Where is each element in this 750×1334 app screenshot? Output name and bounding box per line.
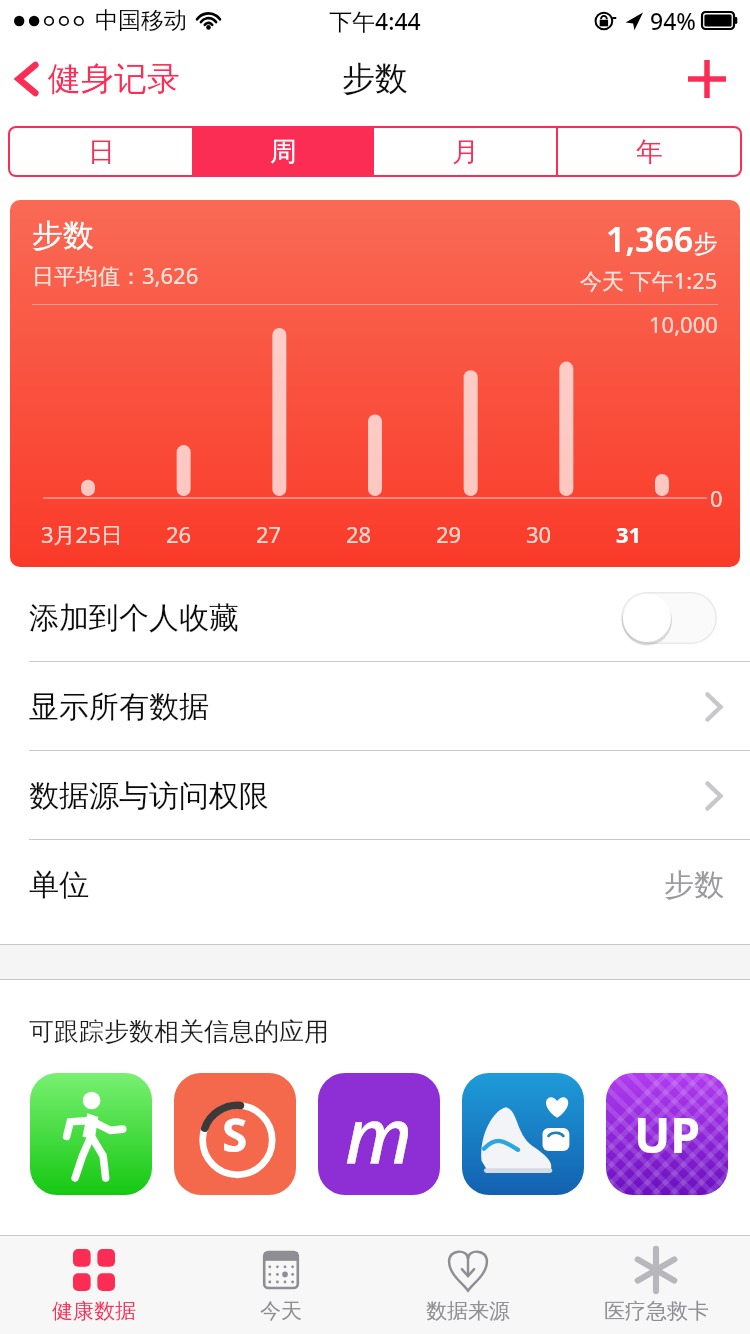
staticText: 今天 下午1:25 <box>580 265 718 295</box>
staticText: 30 <box>526 519 552 549</box>
staticText: 0 <box>710 483 723 513</box>
button[interactable]: UP <box>606 1073 728 1195</box>
staticText: 单位 <box>29 866 89 904</box>
button[interactable]: 数据源与访问权限 <box>0 751 750 840</box>
staticText: 步 <box>694 229 718 259</box>
button[interactable] <box>462 1073 584 1195</box>
staticText: 3月25日 <box>41 519 123 549</box>
button[interactable]: S <box>174 1073 296 1195</box>
staticText: 周 <box>270 135 297 169</box>
button[interactable]: Add <box>664 44 750 114</box>
button[interactable]: 单位 <box>0 840 750 929</box>
staticText: 94% <box>650 5 696 36</box>
button[interactable]: 数据来源 <box>374 1236 562 1334</box>
staticText: 28 <box>346 519 372 549</box>
button[interactable]: 步数 <box>10 200 740 567</box>
staticText: 日平均值：3,626 <box>32 260 199 290</box>
button[interactable]: 健康数据 <box>0 1236 187 1334</box>
button[interactable]: 月 <box>374 128 556 175</box>
staticText: 步数 <box>342 58 408 100</box>
button[interactable]: m <box>318 1073 440 1195</box>
staticText: 月 <box>452 135 479 169</box>
staticText: m <box>345 1082 413 1186</box>
staticText: UP <box>634 1102 701 1167</box>
staticText: 今天 <box>260 1298 302 1324</box>
button[interactable]: 年 <box>558 128 740 175</box>
staticText: 年 <box>636 135 663 169</box>
button[interactable]: 周 <box>192 128 374 175</box>
staticText: 下午4:44 <box>329 5 421 36</box>
staticText: 日 <box>88 135 115 169</box>
button[interactable]: 显示所有数据 <box>0 662 750 751</box>
button[interactable]: 日 <box>10 128 192 175</box>
staticText: 27 <box>256 519 282 549</box>
staticText: 可跟踪步数相关信息的应用 <box>29 1016 329 1047</box>
button[interactable]: 医疗急救卡 <box>562 1236 750 1334</box>
staticText: 健身记录 <box>48 58 180 100</box>
staticText: 26 <box>166 519 192 549</box>
staticText: 10,000 <box>649 309 718 339</box>
staticText: 显示所有数据 <box>29 688 209 726</box>
staticText: 1,366 <box>606 216 694 262</box>
staticText: 医疗急救卡 <box>604 1298 709 1324</box>
staticText: 健康数据 <box>52 1298 136 1324</box>
staticText: S <box>222 1103 248 1166</box>
button[interactable]: 今天 <box>187 1236 374 1334</box>
staticText: 添加到个人收藏 <box>29 599 239 637</box>
staticText: 步数 <box>664 866 724 904</box>
staticText: 29 <box>436 519 462 549</box>
staticText: 数据源与访问权限 <box>29 777 269 815</box>
staticText: 步数 <box>32 216 94 255</box>
staticText: 数据来源 <box>426 1298 510 1324</box>
staticText: 中国移动 <box>95 6 187 35</box>
staticText: 31 <box>616 519 642 549</box>
button[interactable] <box>30 1073 152 1195</box>
button[interactable]: 添加到个人收藏 <box>0 573 750 662</box>
button[interactable]: 健身记录 <box>0 48 194 110</box>
